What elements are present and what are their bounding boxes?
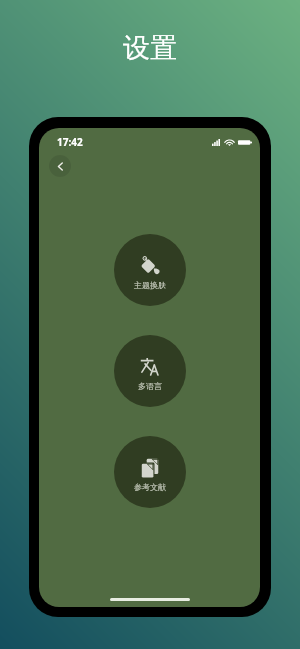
button[interactable]: 多语言: [114, 335, 186, 407]
staticText: 主题换肤: [134, 280, 166, 290]
button[interactable]: 主题换肤: [114, 234, 186, 306]
staticText: 设置: [123, 31, 177, 65]
staticText: 17:42: [57, 135, 83, 149]
staticText: 参考文献: [134, 482, 166, 492]
staticText: 多语言: [138, 381, 162, 391]
button[interactable]: 参考文献: [114, 436, 186, 508]
button[interactable]: Back: [49, 155, 71, 177]
